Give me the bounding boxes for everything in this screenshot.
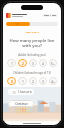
- button[interactable]: 4: [39, 59, 47, 67]
- staticText: 3: [32, 61, 34, 65]
- button[interactable]: [6, 13, 27, 18]
- button[interactable]: Continue: [8, 100, 34, 107]
- button[interactable]: 2: [18, 59, 27, 67]
- button[interactable]: 3: [29, 59, 37, 67]
- button[interactable]: I have pets: [8, 89, 34, 95]
- button[interactable]: Language and currency: [42, 14, 58, 17]
- button[interactable]: 0: [7, 77, 16, 85]
- staticText: How many people live with you?: [8, 37, 56, 48]
- button[interactable]: 2: [29, 77, 37, 85]
- staticText: 2: [22, 61, 24, 65]
- button[interactable]: 1: [7, 59, 16, 67]
- staticText: Continue: [15, 102, 28, 106]
- staticText: Children (below the age of 13): [13, 71, 51, 75]
- staticText: 2: [32, 79, 34, 83]
- button[interactable]: 3: [39, 77, 47, 85]
- staticText: 1: [11, 61, 13, 65]
- staticText: Adults (including you): [18, 53, 46, 57]
- staticText: 0: [11, 79, 13, 83]
- staticText: 3: [42, 79, 44, 83]
- staticText: 4: [42, 61, 44, 65]
- staticText: STEP 3 OF 6: [25, 30, 39, 33]
- staticText: 4+: [51, 79, 55, 83]
- staticText: 1: [22, 79, 24, 83]
- button[interactable]: 1: [18, 77, 27, 85]
- staticText: 5+: [51, 61, 55, 65]
- button[interactable]: 5+: [49, 59, 57, 67]
- button[interactable]: 4+: [49, 77, 57, 85]
- staticText: I have pets: [18, 90, 32, 94]
